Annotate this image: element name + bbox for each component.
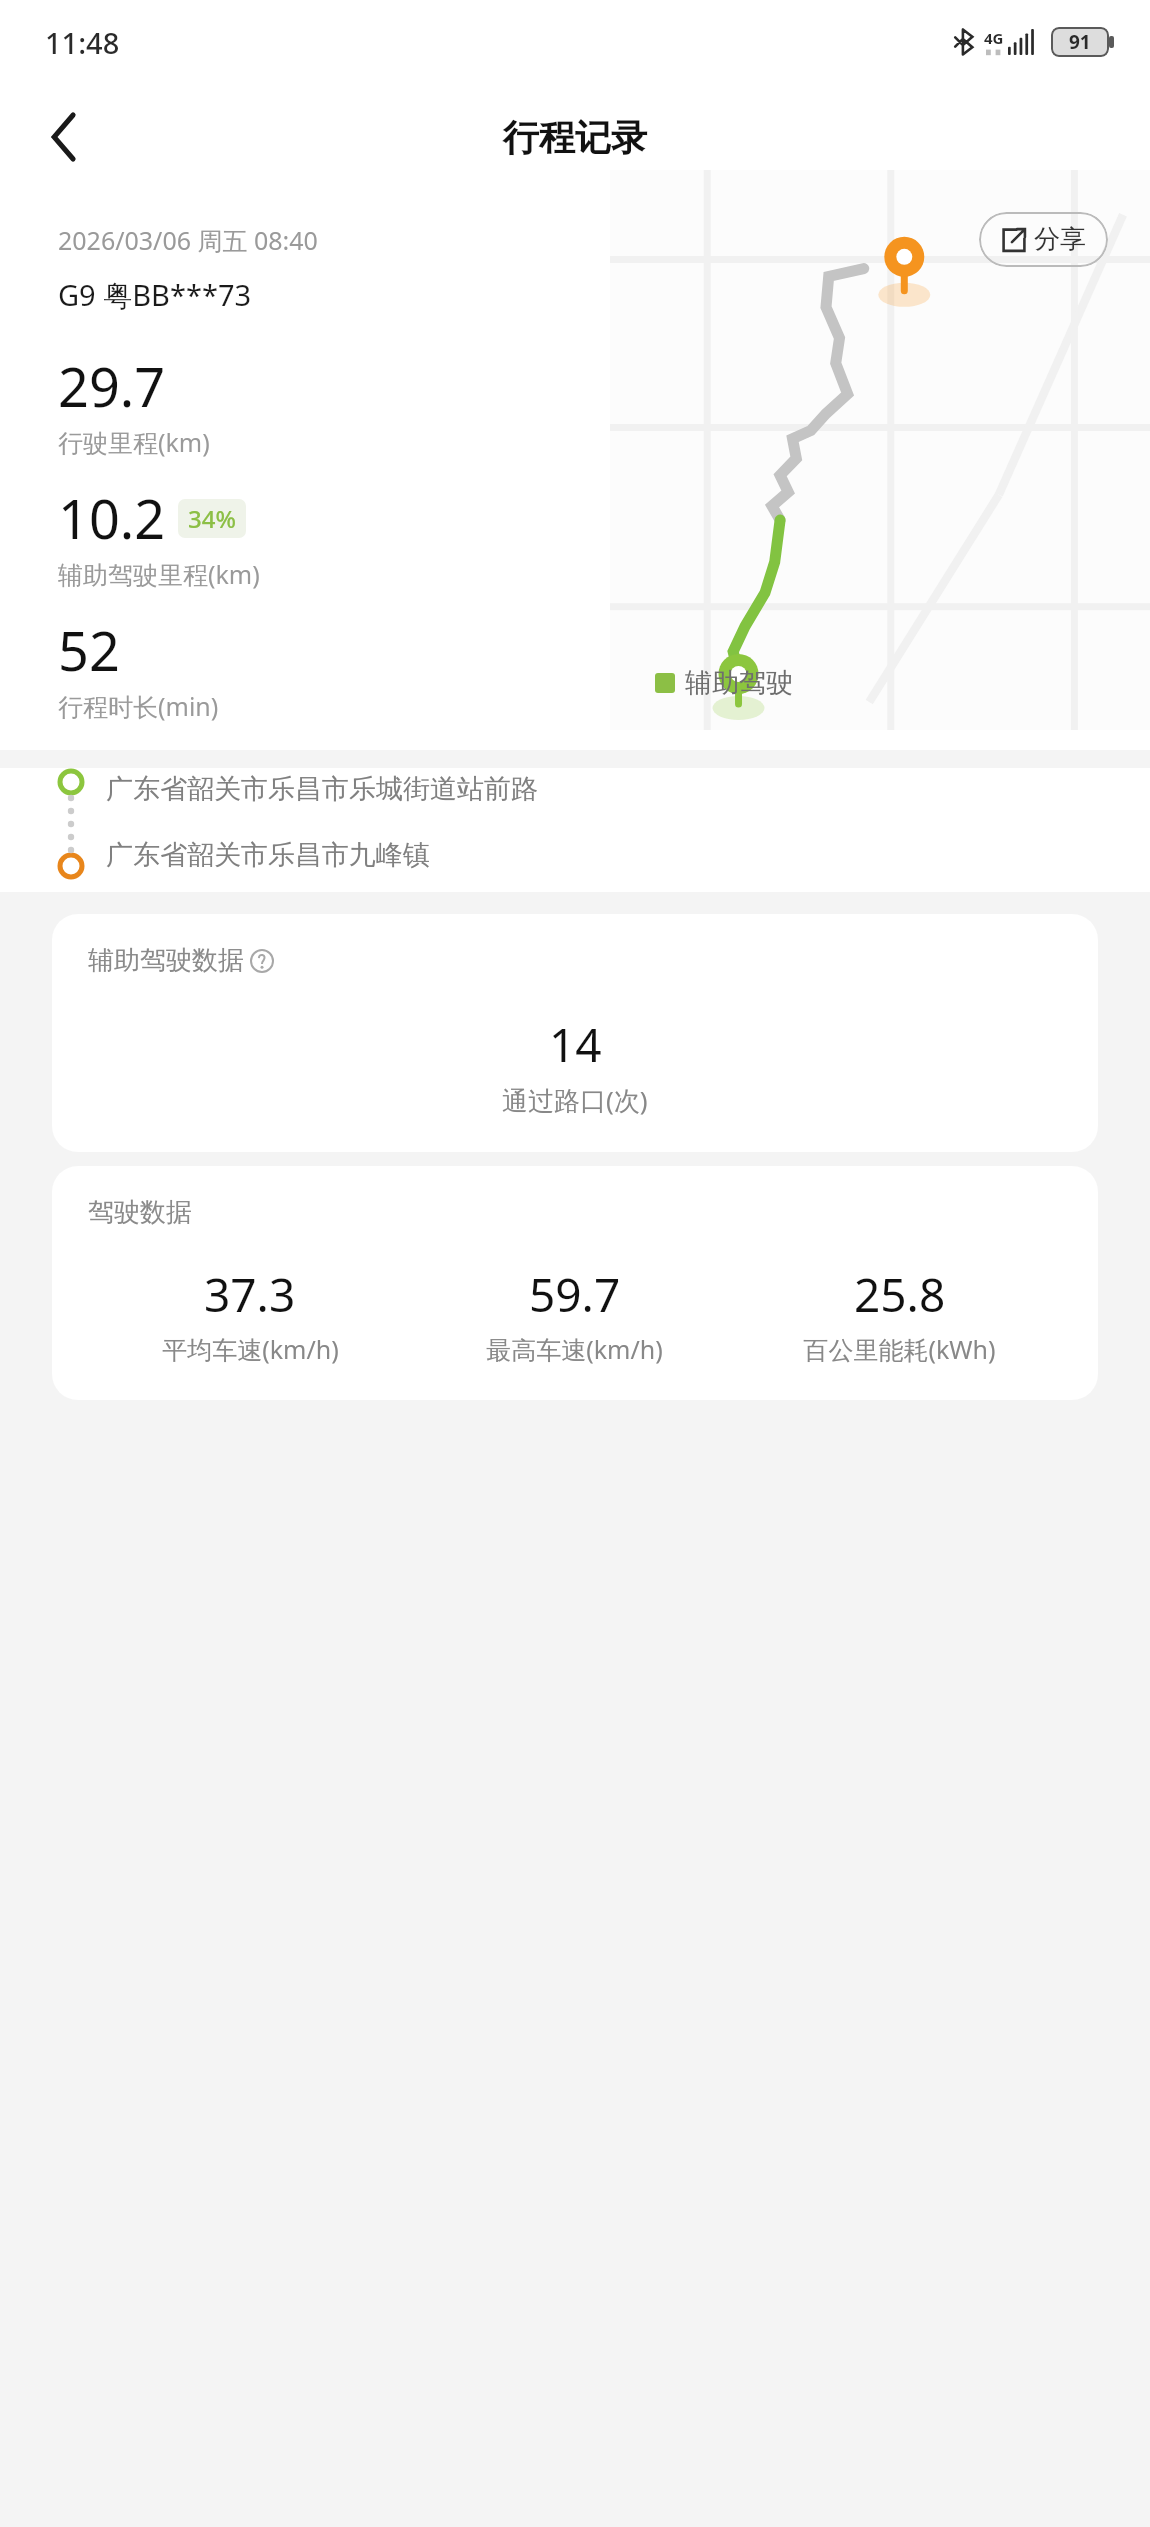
staticText: 行程时长(min) xyxy=(58,689,219,723)
button[interactable]: 分享 xyxy=(979,212,1108,267)
staticText: 平均车速(km/h) xyxy=(162,1332,339,1366)
staticText: 4G xyxy=(984,28,1004,48)
staticText: 辅助驾驶 xyxy=(685,666,793,700)
button[interactable]: 辅助驾驶数据 xyxy=(52,914,1098,1152)
staticText: 34% xyxy=(188,502,236,535)
staticText: 91 xyxy=(1069,29,1091,55)
staticText: 11:48 xyxy=(45,23,120,62)
staticText: 最高车速(km/h) xyxy=(486,1332,663,1366)
staticText: 14 xyxy=(549,1013,602,1076)
staticText: 行程记录 xyxy=(503,115,647,160)
staticText: 辅助驾驶数据 xyxy=(88,944,244,977)
staticText: 59.7 xyxy=(529,1263,621,1326)
staticText: 行驶里程(km) xyxy=(58,425,210,459)
button[interactable]: Back xyxy=(28,101,100,173)
staticText: 广东省韶关市乐昌市乐城街道站前路 xyxy=(106,772,538,806)
staticText: 37.3 xyxy=(204,1263,296,1326)
staticText: 52 xyxy=(58,613,120,687)
staticText: 分享 xyxy=(1034,223,1086,256)
staticText: 2026/03/06 周五 08:40 xyxy=(58,223,318,257)
staticText: 通过路口(次) xyxy=(502,1082,648,1118)
staticText: 广东省韶关市乐昌市九峰镇 xyxy=(106,838,430,872)
staticText: 驾驶数据 xyxy=(88,1196,192,1229)
staticText: 10.2 xyxy=(58,481,166,555)
staticText: 29.7 xyxy=(58,349,166,423)
button[interactable]: 驾驶数据 xyxy=(52,1166,1098,1400)
staticText: 25.8 xyxy=(854,1263,946,1326)
staticText: 百公里能耗(kWh) xyxy=(803,1332,996,1366)
staticText: G9 粤BB***73 xyxy=(58,275,252,315)
staticText: 辅助驾驶里程(km) xyxy=(58,557,260,591)
